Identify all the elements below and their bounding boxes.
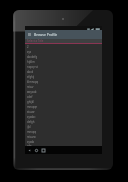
- staticText: xyzabc: [27, 115, 36, 119]
- button[interactable]: abcd: [25, 69, 102, 74]
- staticText: abcd: [27, 70, 34, 74]
- button[interactable]: mnopqr: [25, 104, 102, 109]
- button[interactable]: Back: [26, 146, 33, 154]
- button[interactable]: Select a Title: [25, 39, 102, 43]
- staticText: stuvw: [27, 110, 35, 114]
- button[interactable]: stuvw: [25, 109, 102, 114]
- button[interactable]: efghij: [25, 74, 102, 79]
- button[interactable]: wxyzab: [25, 89, 102, 94]
- button[interactable]: cde: [25, 144, 102, 146]
- staticText: cdef: [27, 95, 33, 99]
- staticText: ijkl: [27, 125, 31, 129]
- staticText: cde: [27, 144, 32, 146]
- staticText: efghij: [27, 75, 35, 79]
- button[interactable]: Navigate up: [25, 30, 102, 39]
- staticText: Select a Title: [27, 39, 44, 43]
- button[interactable]: xyzabc: [25, 114, 102, 119]
- button[interactable]: xyzab: [25, 139, 102, 144]
- staticText: mnopq: [27, 130, 37, 134]
- staticText: xyz: [27, 50, 32, 54]
- button[interactable]: defgh: [25, 119, 102, 124]
- staticText: nopq rst: [27, 65, 38, 69]
- button[interactable]: rstuv: [25, 84, 102, 89]
- button[interactable]: rstuvw: [25, 134, 102, 139]
- button[interactable]: ijkl: [25, 124, 102, 129]
- button[interactable]: ghijkl: [25, 99, 102, 104]
- button[interactable]: abcdefg: [25, 54, 102, 59]
- staticText: hijklm: [27, 60, 35, 64]
- button[interactable]: hijklm: [25, 59, 102, 64]
- staticText: abcdefg: [27, 55, 38, 59]
- staticText: xyzab: [27, 140, 35, 144]
- staticText: rstuv: [27, 85, 34, 89]
- button[interactable]: klmnopq: [25, 79, 102, 84]
- button[interactable]: 2: [25, 44, 102, 49]
- button[interactable]: Home: [33, 146, 40, 154]
- button[interactable]: Recent apps: [40, 146, 47, 154]
- staticText: klmnopq: [27, 80, 39, 84]
- button[interactable]: xyz: [25, 49, 102, 54]
- button[interactable]: cdef: [25, 94, 102, 99]
- staticText: ghijkl: [27, 100, 34, 104]
- staticText: defgh: [27, 120, 35, 124]
- staticText: mnopqr: [27, 105, 38, 109]
- staticText: rstuvw: [27, 135, 36, 139]
- staticText: Browse Profile: [34, 32, 58, 37]
- button[interactable]: nopq rst: [25, 64, 102, 69]
- button[interactable]: mnopq: [25, 129, 102, 134]
- staticText: 2: [27, 45, 29, 49]
- staticText: wxyzab: [27, 90, 37, 94]
